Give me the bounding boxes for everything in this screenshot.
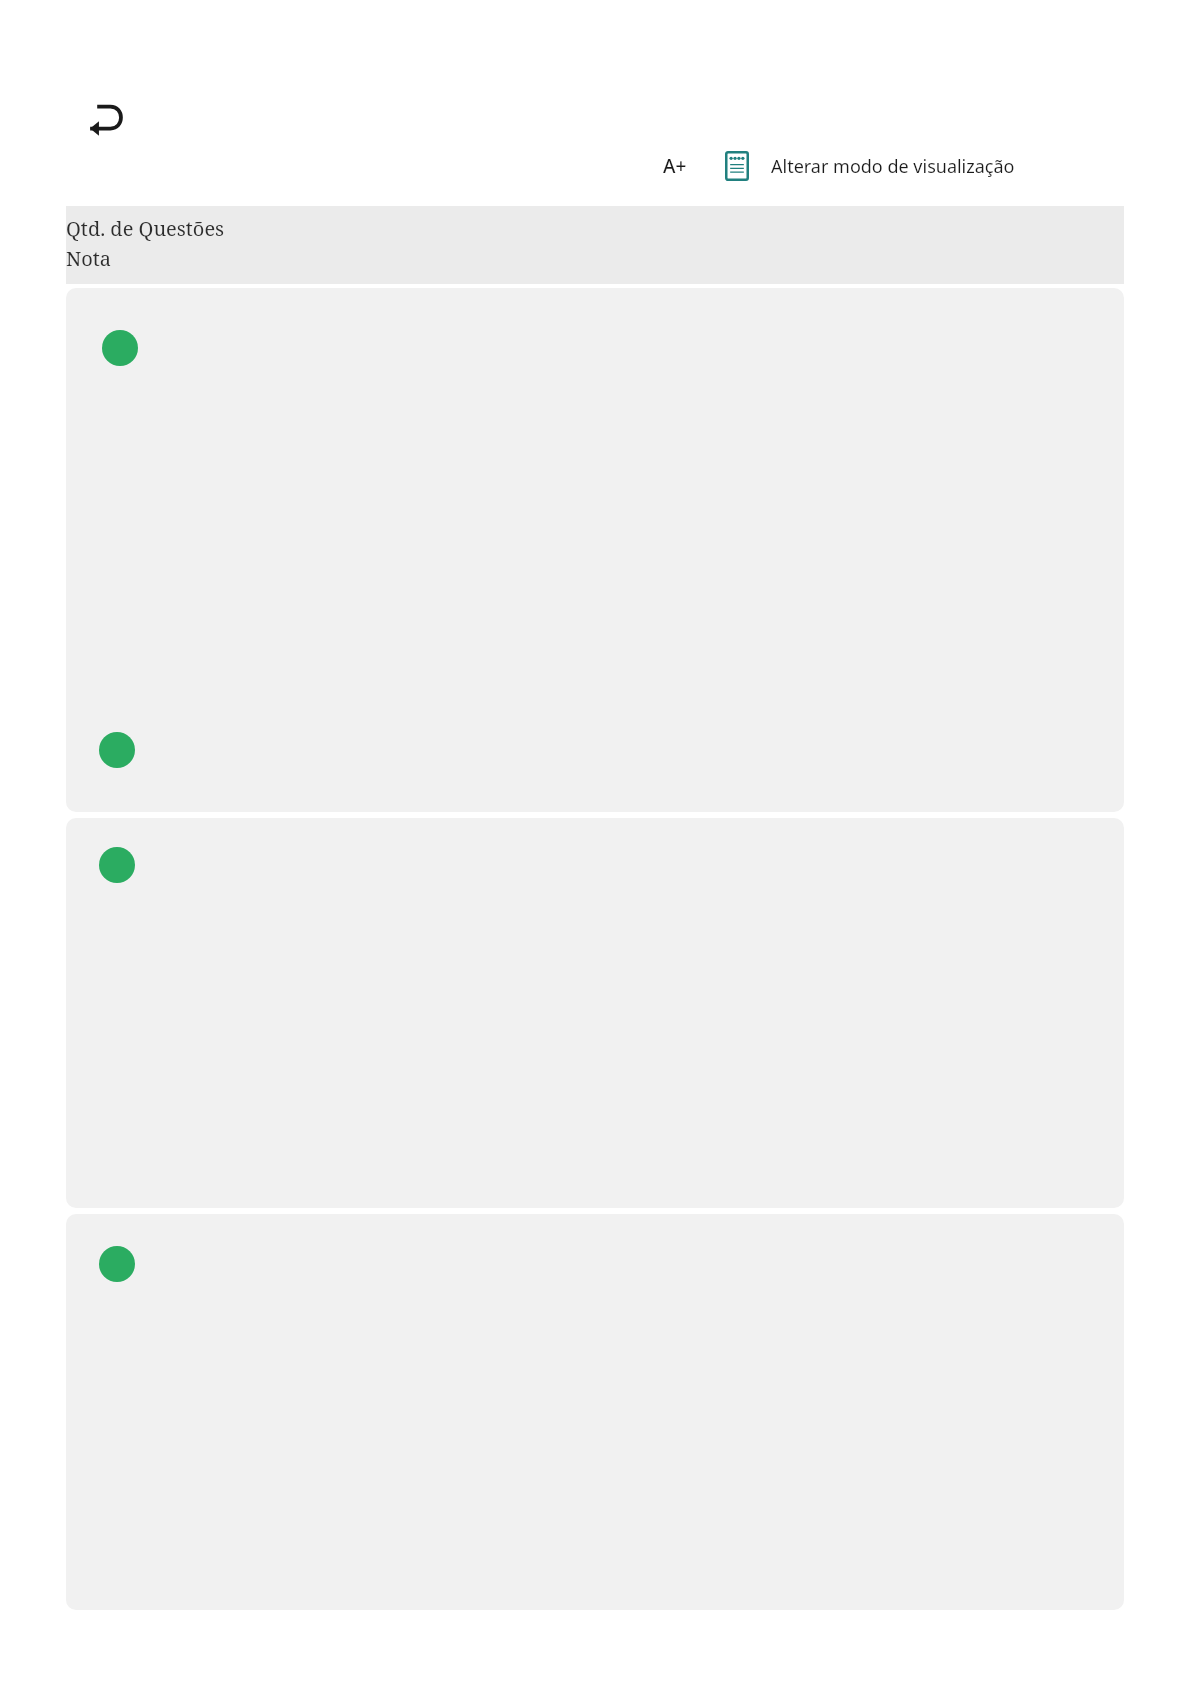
staticText: A+ xyxy=(663,153,687,179)
button[interactable] xyxy=(66,288,1124,812)
button[interactable]: A+ xyxy=(653,143,697,189)
button[interactable]: Voltar xyxy=(76,88,136,148)
staticText: Qtd. de Questões xyxy=(66,215,225,242)
staticText: Nota xyxy=(66,245,112,272)
button[interactable] xyxy=(66,818,1124,1208)
button[interactable]: Alterar modo de visualização xyxy=(702,143,1124,189)
staticText: Alterar modo de visualização xyxy=(771,154,1015,179)
button[interactable] xyxy=(66,1214,1124,1610)
